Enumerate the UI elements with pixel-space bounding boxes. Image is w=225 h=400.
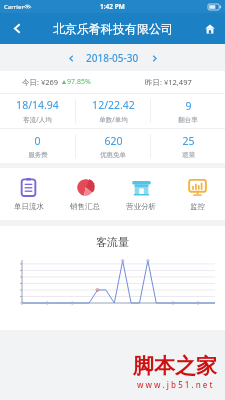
button[interactable]: Next day bbox=[145, 49, 163, 67]
staticText: Carrier bbox=[4, 3, 24, 11]
staticText: 客流量 bbox=[0, 235, 225, 249]
button[interactable]: Home bbox=[195, 13, 225, 44]
staticText: 2018-05-30 bbox=[86, 51, 139, 65]
staticText: 营业分析 bbox=[126, 202, 156, 211]
button[interactable]: Previous day bbox=[62, 49, 80, 67]
button[interactable]: 单日流水 bbox=[0, 168, 57, 220]
staticText: 620 bbox=[104, 134, 123, 148]
staticText: w w w . j b 5 1 . n e t bbox=[137, 379, 213, 390]
staticText: 9 bbox=[185, 99, 192, 113]
staticText: 97.85% bbox=[67, 77, 91, 87]
staticText: 单日流水 bbox=[14, 202, 44, 211]
staticText: 1:42 PM bbox=[100, 2, 125, 11]
staticText: 今日: ¥269 bbox=[22, 77, 59, 87]
staticText: 优惠免单 bbox=[100, 151, 126, 159]
staticText: 客流/人均 bbox=[23, 115, 52, 124]
staticText: 18/14.94 bbox=[16, 98, 59, 112]
button[interactable]: 监控 bbox=[169, 168, 225, 220]
staticText: 12/22.42 bbox=[92, 98, 135, 112]
staticText: 监控 bbox=[190, 202, 205, 211]
staticText: 销售汇总 bbox=[70, 202, 100, 211]
staticText: 服务费 bbox=[28, 151, 48, 159]
button[interactable]: 25 bbox=[151, 129, 225, 163]
staticText: 0 bbox=[34, 134, 41, 148]
staticText: 25 bbox=[182, 134, 195, 148]
button[interactable]: 营业分析 bbox=[113, 168, 169, 220]
staticText: 昨日: ¥12,497 bbox=[145, 77, 192, 87]
button[interactable]: 12/22.42 bbox=[76, 94, 150, 128]
button[interactable]: 销售汇总 bbox=[57, 168, 113, 220]
staticText: 脚本之家 bbox=[133, 353, 217, 379]
staticText: 翻台率 bbox=[178, 116, 198, 124]
staticText: 单数/单均 bbox=[99, 115, 128, 124]
staticText: 北京乐肴科技有限公司 bbox=[53, 21, 173, 36]
button[interactable]: 9 bbox=[151, 94, 225, 128]
button[interactable]: 0 bbox=[0, 129, 75, 163]
button[interactable]: 18/14.94 bbox=[0, 94, 75, 128]
staticText: 退菜 bbox=[182, 151, 195, 159]
button[interactable]: Back bbox=[0, 13, 34, 44]
button[interactable]: 620 bbox=[76, 129, 150, 163]
